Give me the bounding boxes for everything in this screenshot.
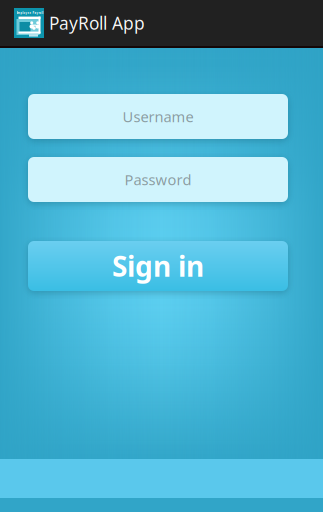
staticText: PayRoll App bbox=[49, 11, 145, 34]
staticText: Employee Payroll bbox=[16, 11, 43, 15]
button[interactable]: Password bbox=[28, 157, 288, 202]
button[interactable]: Username bbox=[28, 94, 288, 139]
staticText: Password bbox=[124, 170, 191, 189]
staticText: Username bbox=[122, 107, 193, 126]
button[interactable]: Sign in bbox=[28, 241, 288, 291]
staticText: Sign in bbox=[112, 247, 204, 285]
